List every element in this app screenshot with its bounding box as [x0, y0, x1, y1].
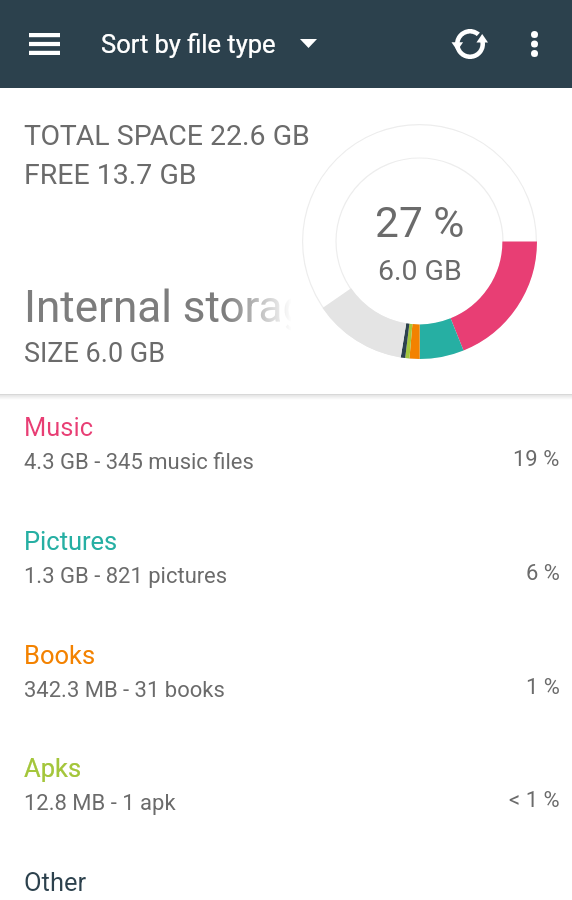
staticText: 12.8 MB - 1 apk — [24, 790, 176, 816]
staticText: < 1 % — [509, 787, 560, 813]
button[interactable]: Books — [0, 629, 572, 743]
staticText: Pictures — [24, 526, 118, 556]
button[interactable]: Music — [0, 401, 572, 515]
button[interactable]: Open navigation drawer — [13, 13, 75, 75]
staticText: 342.3 MB - 31 books — [24, 677, 225, 703]
staticText: TOTAL SPACE 22.6 GB — [24, 119, 310, 152]
staticText: Other — [24, 867, 87, 897]
button[interactable]: Pictures — [0, 515, 572, 629]
staticText: 6.0 GB — [378, 254, 462, 287]
staticText: Sort by file type — [101, 29, 276, 59]
staticText: Internal storage — [24, 281, 331, 333]
button[interactable]: More options — [508, 18, 560, 70]
staticText: 27 % — [375, 198, 465, 248]
button[interactable]: Refresh — [444, 18, 496, 70]
staticText: 6 % — [526, 560, 560, 586]
staticText: 19 % — [513, 446, 560, 472]
staticText: FREE 13.7 GB — [24, 158, 197, 191]
staticText: 1 % — [526, 674, 560, 700]
button[interactable]: Apks — [0, 742, 572, 856]
staticText: 1.3 GB - 821 pictures — [24, 563, 228, 589]
staticText: Apks — [24, 753, 82, 783]
staticText: Music — [24, 412, 94, 442]
button[interactable]: Other — [0, 856, 572, 900]
staticText: Books — [24, 640, 96, 670]
staticText: SIZE 6.0 GB — [24, 337, 165, 369]
button[interactable]: Sort by file type — [101, 29, 317, 59]
staticText: 4.3 GB - 345 music files — [24, 449, 254, 475]
